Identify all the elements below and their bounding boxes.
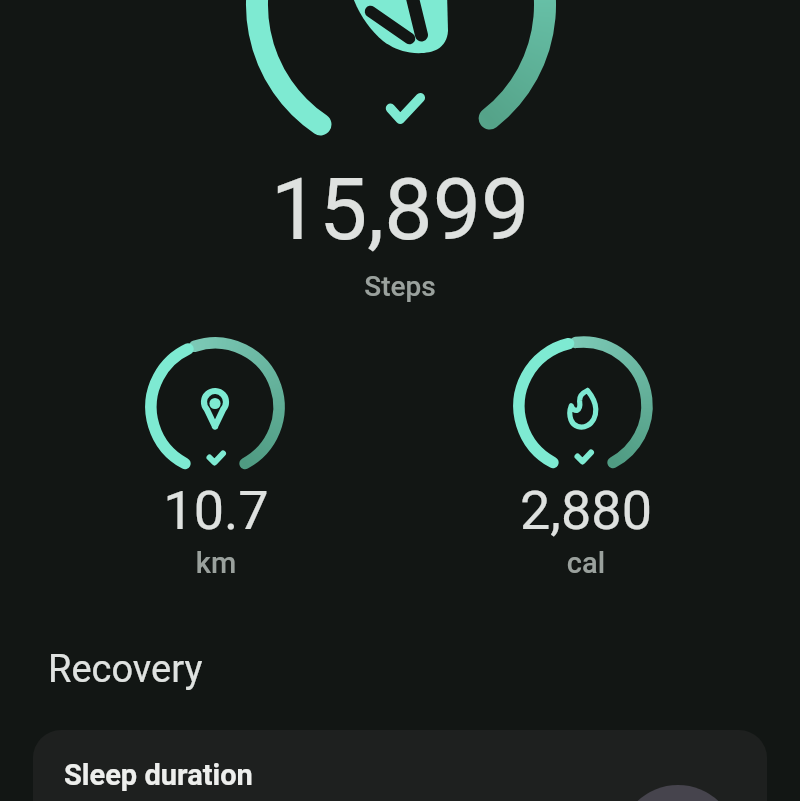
button[interactable]: 2,880 — [436, 479, 736, 542]
staticText: Sleep duration — [64, 758, 253, 792]
button[interactable]: 10.7 — [66, 479, 366, 542]
staticText: 15,899 — [0, 159, 800, 260]
staticText: km — [66, 546, 366, 580]
staticText: 2,880 — [436, 479, 736, 542]
staticText: Recovery — [48, 647, 203, 692]
button[interactable]: Sleep duration — [33, 730, 767, 801]
staticText: Steps — [0, 270, 800, 303]
staticText: 10.7 — [66, 479, 366, 542]
staticText: cal — [436, 546, 736, 580]
